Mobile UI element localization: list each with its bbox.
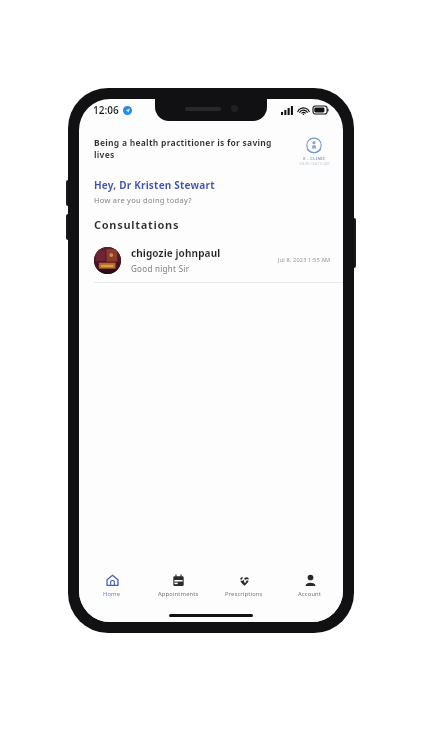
staticText: Appointments bbox=[158, 590, 199, 598]
staticText: Being a health practitioner is for savin… bbox=[94, 137, 289, 161]
staticText: Prescriptions bbox=[225, 590, 263, 598]
staticText: Good night Sir bbox=[131, 263, 190, 274]
staticText: Hey, Dr Kristen Stewart bbox=[94, 178, 215, 192]
staticText: Account bbox=[298, 590, 322, 598]
staticText: ONLINE HEALTH CARE bbox=[299, 162, 330, 166]
staticText: Home bbox=[103, 590, 121, 598]
button[interactable]: Appointments bbox=[145, 564, 211, 608]
button[interactable]: Prescriptions bbox=[211, 564, 277, 608]
staticText: 12:06 bbox=[93, 103, 119, 117]
staticText: chigozie johnpaul bbox=[131, 246, 221, 260]
staticText: Consultations bbox=[94, 217, 180, 232]
staticText: Jul 8, 2023 1:55 AM bbox=[278, 256, 331, 264]
button[interactable]: Account bbox=[277, 564, 343, 608]
staticText: How are you doing today? bbox=[94, 195, 192, 205]
staticText: E - CLINIC bbox=[303, 156, 326, 162]
button[interactable]: Home bbox=[79, 564, 145, 608]
button[interactable]: chigozie johnpaul bbox=[79, 242, 343, 282]
